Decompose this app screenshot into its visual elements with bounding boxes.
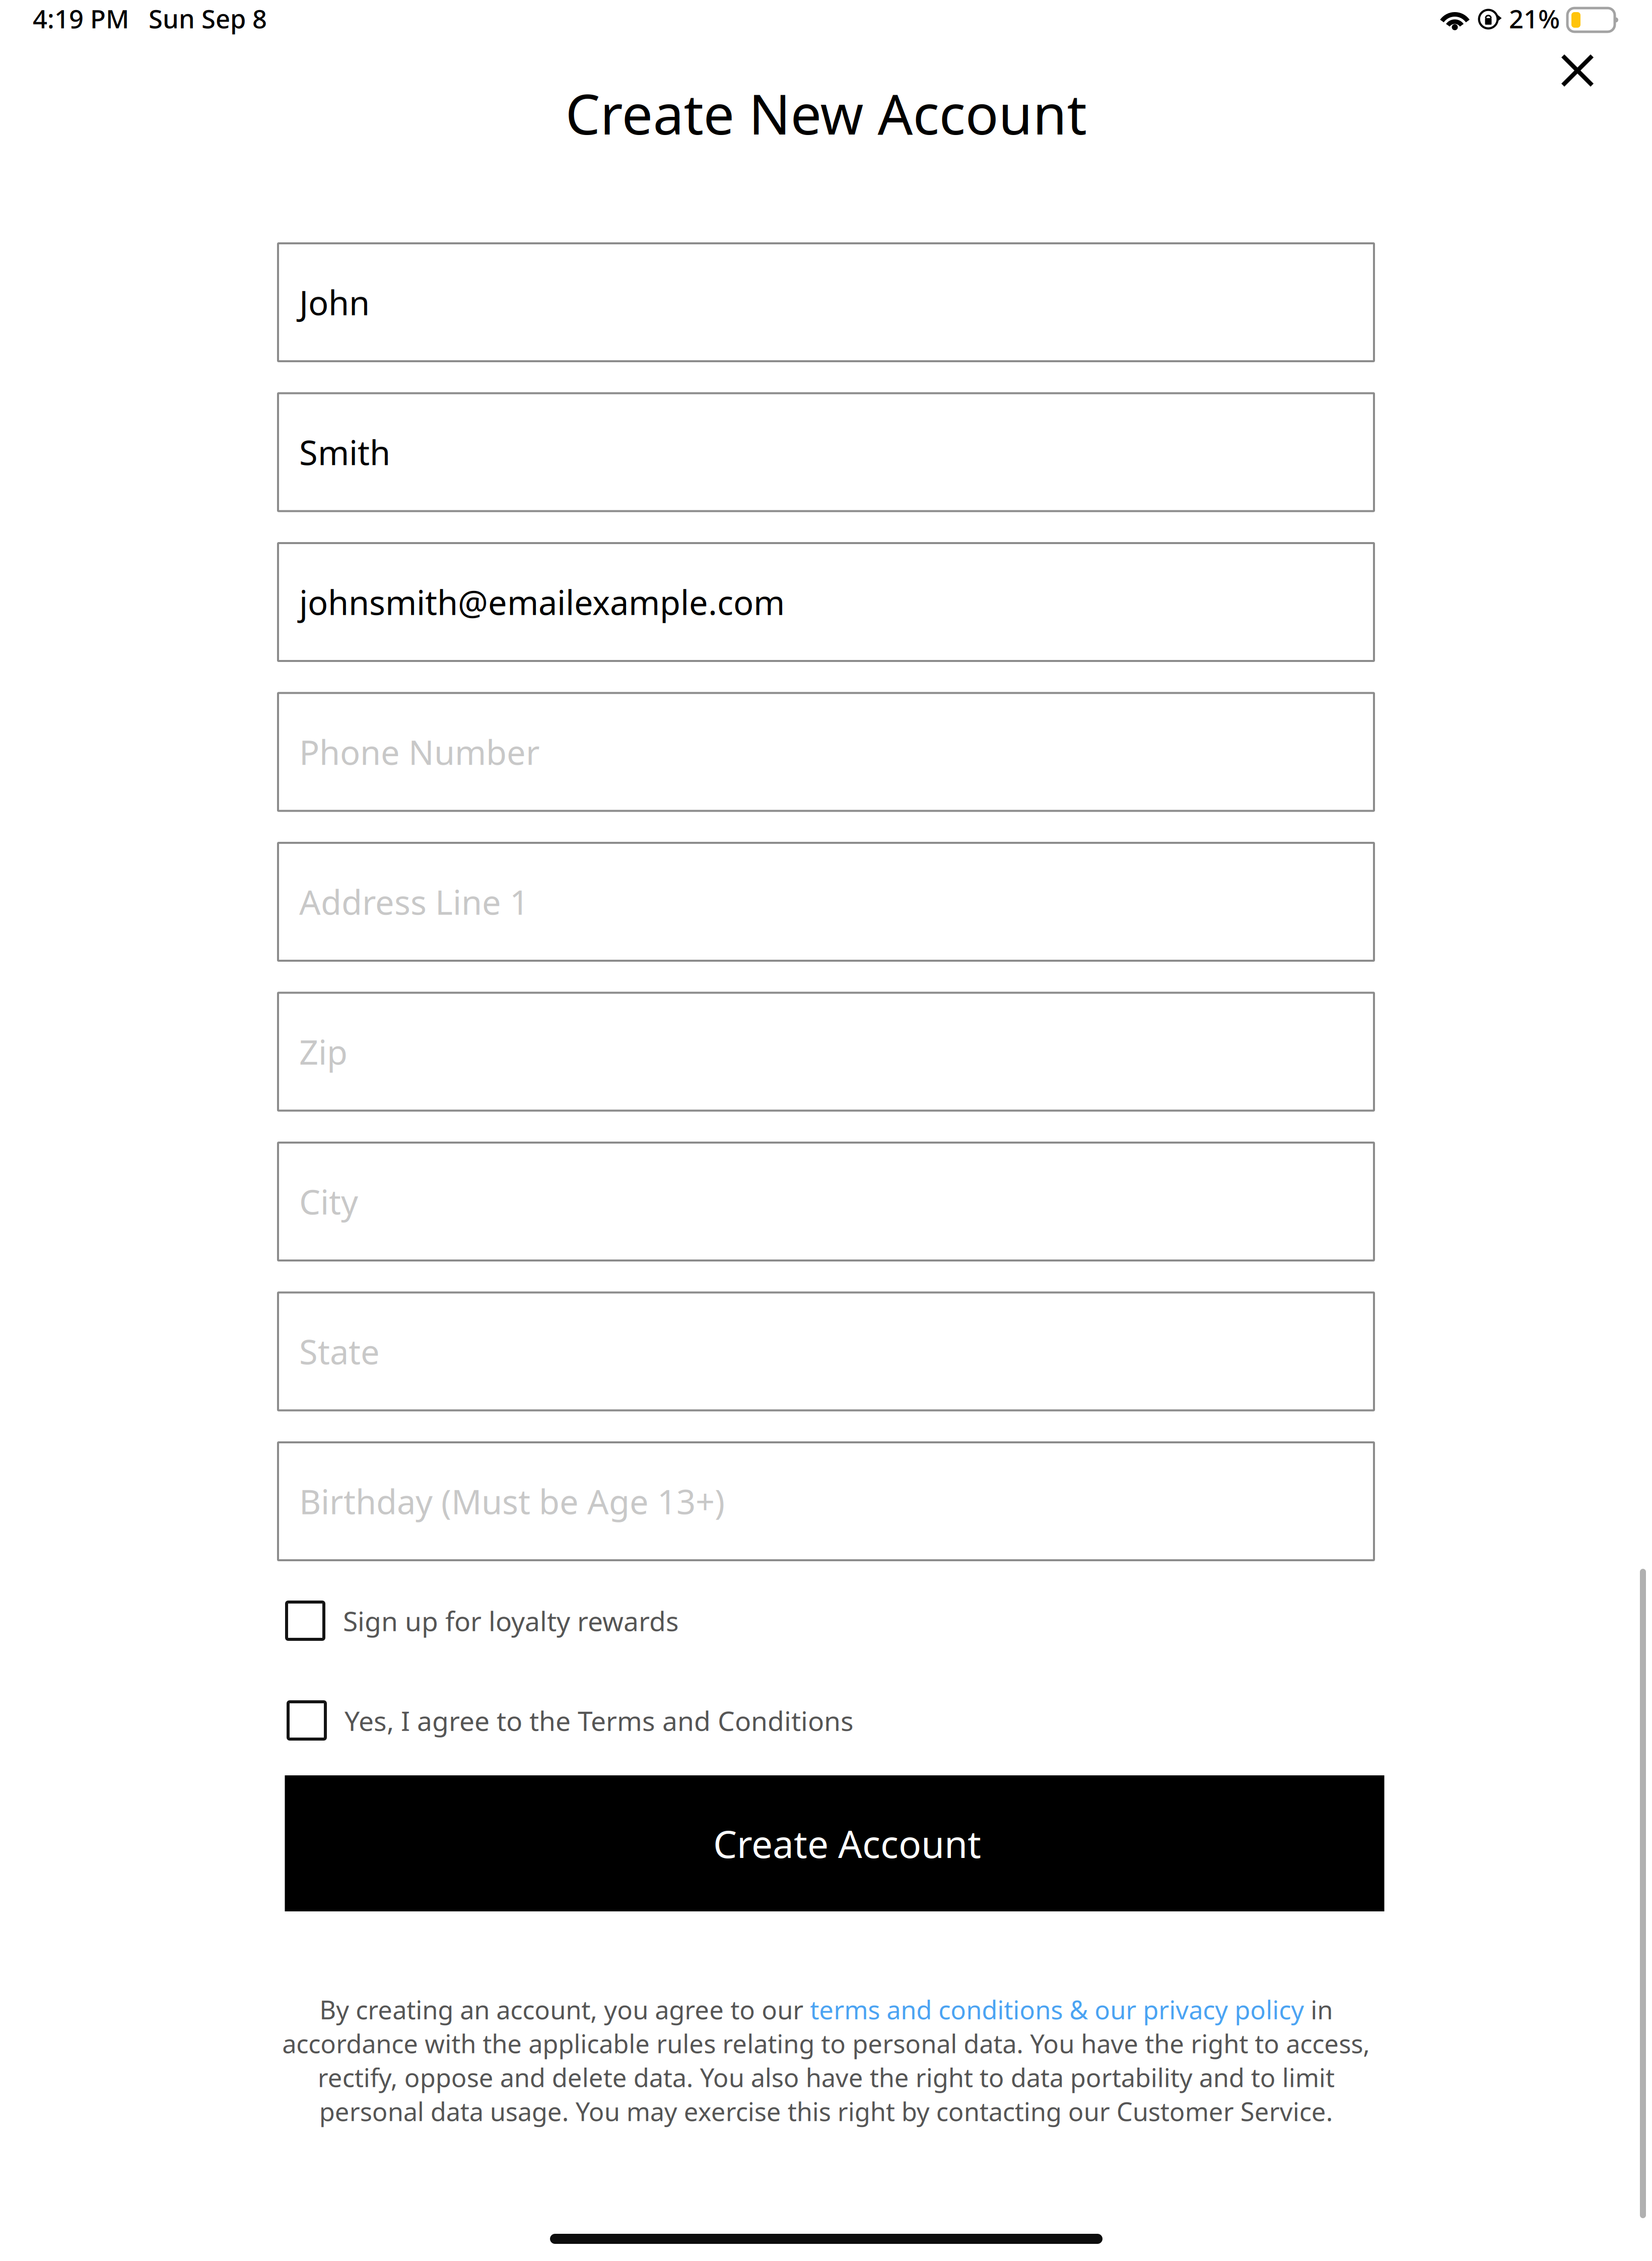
button[interactable]: Birthday (Must be Age 13+) [278,1442,1374,1560]
button[interactable]: City [278,1143,1374,1260]
staticText: Yes, I agree to the Terms and Conditions [345,1703,854,1738]
staticText: Birthday (Must be Age 13+) [299,1479,725,1524]
staticText: By creating an account, you agree to our… [282,1992,1370,2128]
button[interactable]: Close [1547,40,1608,101]
staticText: City [299,1179,358,1224]
button[interactable]: State [278,1292,1374,1410]
button[interactable]: Phone Number [278,693,1374,811]
staticText: Create New Account [565,77,1087,150]
button[interactable]: johnsmith@emailexample.com [278,543,1374,661]
staticText: Sign up for loyalty rewards [343,1603,679,1639]
staticText: Zip [299,1029,348,1074]
button[interactable]: Address Line 1 [278,843,1374,961]
staticText: 21% [1509,2,1560,35]
button[interactable]: John [278,243,1374,361]
staticText: 4:19 PM [33,2,129,35]
button[interactable]: Sign up for loyalty rewards [287,1597,1383,1645]
staticText: Phone Number [299,730,540,774]
staticText: John [299,280,370,325]
button[interactable]: Yes, I agree to the Terms and Conditions [288,1696,1384,1745]
staticText: johnsmith@emailexample.com [299,580,785,624]
button[interactable]: Create Account [285,1775,1384,1911]
staticText: Sun Sep 8 [149,2,267,35]
staticText: Address Line 1 [299,879,529,924]
button[interactable]: Smith [278,393,1374,511]
button[interactable]: Zip [278,993,1374,1111]
staticText: Smith [299,430,390,474]
staticText: Create Account [713,1818,981,1868]
staticText: State [299,1329,380,1374]
